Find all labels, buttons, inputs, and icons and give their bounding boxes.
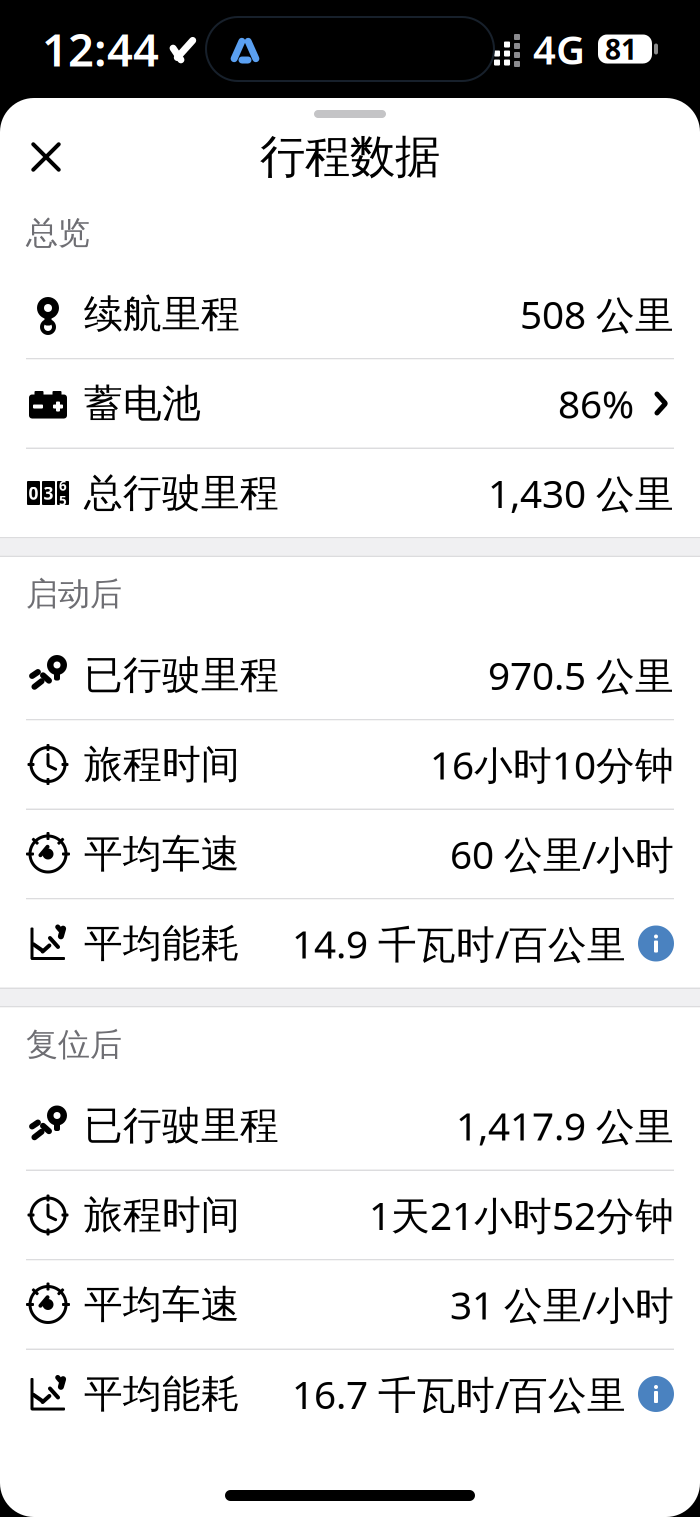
staticText: 平均车速 xyxy=(84,1281,240,1328)
button[interactable]: 已行驶里程 xyxy=(0,1081,700,1171)
staticText: 14.9 千瓦时/百公里 xyxy=(292,918,626,969)
staticText: 970.5 公里 xyxy=(488,649,674,701)
button[interactable]: 0 xyxy=(0,449,700,537)
button[interactable]: 平均能耗说明 xyxy=(626,925,674,961)
button[interactable]: 平均能耗 xyxy=(0,899,700,987)
staticText: 已行驶里程 xyxy=(84,1102,279,1149)
staticText: 平均能耗 xyxy=(84,1370,240,1418)
staticText: 1,417.9 公里 xyxy=(456,1100,674,1151)
staticText: 旅程时间 xyxy=(84,1191,240,1239)
staticText: 86% xyxy=(558,378,634,429)
staticText: 4G xyxy=(533,22,585,75)
staticText: 复位后 xyxy=(26,1025,122,1064)
staticText: 1天21小时52分钟 xyxy=(369,1189,674,1241)
staticText: 启动后 xyxy=(26,574,122,614)
staticText: 平均能耗 xyxy=(84,920,240,967)
staticText: 31 公里/小时 xyxy=(450,1279,674,1330)
staticText: 508 公里 xyxy=(520,288,674,340)
staticText: 旅程时间 xyxy=(84,741,240,788)
staticText: 81 xyxy=(605,30,637,68)
staticText: 6 xyxy=(59,477,67,494)
button[interactable]: 平均能耗说明 xyxy=(626,1376,674,1412)
staticText: 16.7 千瓦时/百公里 xyxy=(292,1368,626,1420)
staticText: 12:44 xyxy=(42,19,159,79)
button[interactable]: 平均车速 xyxy=(0,810,700,899)
staticText: 3 xyxy=(43,481,53,504)
staticText: 已行驶里程 xyxy=(84,651,279,699)
staticText: 蓄电池 xyxy=(84,380,201,427)
button[interactable]: 平均能耗 xyxy=(0,1350,700,1438)
staticText: 行程数据 xyxy=(260,129,440,185)
staticText: 总览 xyxy=(26,213,90,253)
button[interactable]: 已行驶里程 xyxy=(0,631,700,720)
staticText: 平均车速 xyxy=(84,830,240,878)
staticText: 60 公里/小时 xyxy=(450,828,674,880)
button[interactable]: 平均车速 xyxy=(0,1260,700,1350)
staticText: 1,430 公里 xyxy=(488,467,674,519)
staticText: 总行驶里程 xyxy=(84,469,279,517)
button[interactable]: 蓄电池 xyxy=(0,359,700,449)
button[interactable]: 旅程时间 xyxy=(0,1171,700,1260)
staticText: 0 xyxy=(28,481,38,504)
button[interactable]: 续航里程 xyxy=(0,270,700,359)
staticText: 16小时10分钟 xyxy=(430,739,674,790)
button[interactable]: 旅程时间 xyxy=(0,720,700,810)
staticText: 续航里程 xyxy=(84,290,240,338)
staticText: 5 xyxy=(59,491,67,509)
button[interactable]: 关闭 xyxy=(18,129,74,185)
